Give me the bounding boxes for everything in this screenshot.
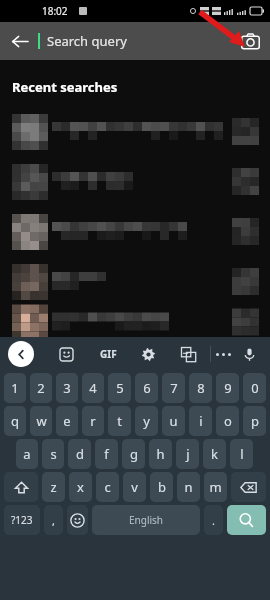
staticText: v xyxy=(131,478,138,496)
button[interactable]: p xyxy=(243,406,266,436)
button[interactable]: 8 xyxy=(189,373,212,403)
staticText: y xyxy=(143,412,150,430)
staticText: ?123 xyxy=(11,513,33,527)
button[interactable]: Settings xyxy=(136,342,160,366)
staticText: 18:02 xyxy=(42,4,68,18)
button[interactable]: u xyxy=(162,406,185,436)
button[interactable]: v xyxy=(123,472,146,502)
staticText: 8 xyxy=(197,379,205,397)
button[interactable]: Emoji xyxy=(67,505,88,535)
staticText: c xyxy=(104,478,111,496)
button[interactable]: Back xyxy=(0,22,38,60)
button[interactable]: l xyxy=(230,439,253,469)
button[interactable]: e xyxy=(56,406,78,436)
button[interactable]: g xyxy=(122,439,145,469)
button[interactable]: j xyxy=(176,439,199,469)
staticText: 2 xyxy=(37,379,45,397)
staticText: 4 xyxy=(89,379,97,397)
staticText: w xyxy=(36,412,47,430)
staticText: r xyxy=(90,412,96,430)
button[interactable]: k xyxy=(203,439,226,469)
staticText: q xyxy=(11,412,19,430)
button[interactable]: Translate xyxy=(176,342,200,366)
button[interactable]: Search xyxy=(227,505,266,535)
button[interactable]: c xyxy=(96,472,119,502)
staticText: t xyxy=(117,412,122,430)
staticText: GIF xyxy=(100,347,117,361)
staticText: d xyxy=(76,445,84,463)
staticText: h xyxy=(156,445,165,463)
button[interactable]: h xyxy=(149,439,172,469)
staticText: s xyxy=(50,445,57,463)
staticText: 5 xyxy=(116,379,124,397)
button[interactable]: 9 xyxy=(216,373,239,403)
button[interactable]: Recent search item xyxy=(0,206,270,256)
staticText: English xyxy=(129,513,164,527)
staticText: l xyxy=(240,445,244,463)
button[interactable]: w xyxy=(30,406,52,436)
button[interactable]: Shift xyxy=(4,472,38,502)
button[interactable]: t xyxy=(108,406,131,436)
staticText: 7 xyxy=(170,379,178,397)
staticText: e xyxy=(63,412,71,430)
button[interactable]: , xyxy=(44,505,63,535)
staticText: z xyxy=(50,478,57,496)
button[interactable]: m xyxy=(204,472,227,502)
staticText: 3 xyxy=(63,379,71,397)
button[interactable]: z xyxy=(42,472,65,502)
staticText: j xyxy=(186,445,190,463)
button[interactable]: Backspace xyxy=(231,472,266,502)
staticText: n xyxy=(184,478,193,496)
staticText: b xyxy=(158,478,166,496)
button[interactable]: Recent search item xyxy=(0,306,270,337)
button[interactable]: GIF xyxy=(94,342,122,366)
staticText: Recent searches xyxy=(12,78,118,96)
button[interactable]: b xyxy=(150,472,173,502)
staticText: , xyxy=(52,513,55,528)
button[interactable]: Stickers xyxy=(54,342,78,366)
button[interactable]: n xyxy=(177,472,200,502)
button[interactable]: d xyxy=(68,439,91,469)
staticText: 9 xyxy=(224,379,232,397)
button[interactable]: 2 xyxy=(30,373,52,403)
button[interactable]: 3 xyxy=(56,373,78,403)
staticText: o xyxy=(224,412,232,430)
button[interactable]: 4 xyxy=(82,373,104,403)
staticText: g xyxy=(130,445,138,463)
button[interactable]: i xyxy=(189,406,212,436)
button[interactable]: English xyxy=(92,505,200,535)
button[interactable]: Search with camera xyxy=(230,22,270,60)
button[interactable]: Expand toolbar xyxy=(8,341,34,367)
button[interactable]: More options xyxy=(211,342,235,366)
button[interactable]: Recent search item xyxy=(0,106,270,156)
staticText: f xyxy=(104,445,109,463)
staticText: 0 xyxy=(251,379,259,397)
button[interactable]: 7 xyxy=(162,373,185,403)
button[interactable]: r xyxy=(82,406,104,436)
button[interactable]: 1 xyxy=(4,373,26,403)
staticText: Search query xyxy=(47,32,127,50)
button[interactable]: 5 xyxy=(108,373,131,403)
staticText: k xyxy=(211,445,218,463)
button[interactable]: ?123 xyxy=(4,505,40,535)
staticText: i xyxy=(199,412,203,430)
staticText: u xyxy=(169,412,178,430)
staticText: m xyxy=(209,478,222,496)
button[interactable]: f xyxy=(95,439,118,469)
button[interactable]: y xyxy=(135,406,158,436)
button[interactable]: 6 xyxy=(135,373,158,403)
button[interactable]: Recent search item xyxy=(0,156,270,206)
staticText: . xyxy=(212,513,215,528)
staticText: a xyxy=(23,445,31,463)
staticText: p xyxy=(251,412,259,430)
button[interactable]: a xyxy=(16,439,38,469)
button[interactable]: s xyxy=(42,439,64,469)
button[interactable]: o xyxy=(216,406,239,436)
button[interactable]: Recent search item xyxy=(0,256,270,306)
button[interactable]: x xyxy=(69,472,92,502)
button[interactable]: Voice input xyxy=(236,341,262,367)
button[interactable]: q xyxy=(4,406,26,436)
button[interactable]: . xyxy=(204,505,223,535)
button[interactable]: 0 xyxy=(243,373,266,403)
staticText: x xyxy=(77,478,84,496)
